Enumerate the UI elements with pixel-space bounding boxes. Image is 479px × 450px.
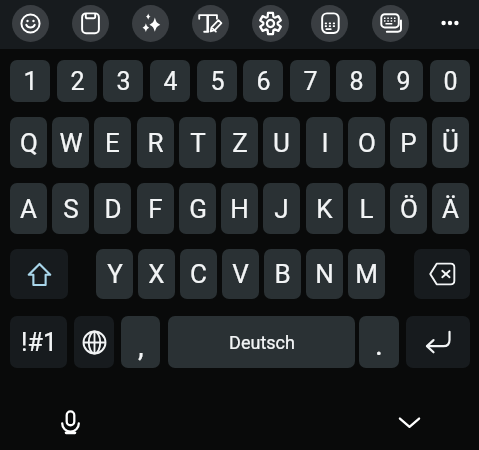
- button[interactable]: S: [52, 183, 89, 234]
- button[interactable]: E: [94, 117, 131, 168]
- staticText: W: [59, 128, 83, 158]
- staticText: A: [20, 194, 37, 224]
- staticText: G: [189, 194, 207, 224]
- button[interactable]: 5: [197, 60, 237, 102]
- button[interactable]: 7: [290, 60, 330, 102]
- staticText: 3: [116, 67, 131, 96]
- button[interactable]: Q: [10, 117, 47, 168]
- button[interactable]: Number pad: [311, 5, 348, 42]
- button[interactable]: O: [348, 117, 385, 168]
- button[interactable]: 9: [383, 60, 423, 102]
- button[interactable]: Z: [221, 117, 258, 168]
- staticText: V: [232, 259, 249, 289]
- button[interactable]: F: [137, 183, 174, 234]
- button[interactable]: Change language: [74, 316, 114, 368]
- button[interactable]: ,: [121, 316, 160, 368]
- staticText: P: [400, 128, 417, 158]
- button[interactable]: Ü: [432, 117, 469, 168]
- button[interactable]: Clipboard: [72, 5, 109, 42]
- button[interactable]: Voice input: [50, 402, 90, 442]
- button[interactable]: 6: [243, 60, 283, 102]
- staticText: H: [230, 194, 249, 224]
- button[interactable]: 4: [150, 60, 190, 102]
- button[interactable]: 3: [103, 60, 143, 102]
- staticText: Ö: [400, 194, 418, 224]
- button[interactable]: U: [263, 117, 300, 168]
- staticText: 2: [70, 67, 85, 96]
- staticText: !#1: [21, 328, 57, 357]
- button[interactable]: More options: [431, 4, 469, 42]
- staticText: 9: [396, 67, 411, 96]
- button[interactable]: D: [94, 183, 131, 234]
- staticText: Y: [107, 259, 123, 289]
- staticText: 5: [210, 67, 225, 96]
- staticText: Deutsch: [229, 332, 295, 353]
- button[interactable]: AI suggestions: [132, 5, 169, 42]
- staticText: Q: [20, 128, 38, 158]
- button[interactable]: Text editing: [192, 5, 229, 42]
- button[interactable]: K: [306, 183, 343, 234]
- button[interactable]: I: [306, 117, 343, 168]
- staticText: R: [147, 128, 164, 158]
- staticText: Ä: [442, 194, 459, 224]
- button[interactable]: Settings: [252, 5, 289, 42]
- button[interactable]: H: [221, 183, 258, 234]
- button[interactable]: Switch keyboard: [372, 5, 409, 42]
- button[interactable]: W: [52, 117, 89, 168]
- staticText: N: [315, 259, 334, 289]
- button[interactable]: Ö: [390, 183, 427, 234]
- button[interactable]: 0: [430, 60, 470, 102]
- staticText: 8: [349, 67, 364, 96]
- staticText: E: [105, 128, 120, 158]
- button[interactable]: R: [137, 117, 174, 168]
- staticText: O: [358, 128, 376, 158]
- button[interactable]: Y: [96, 249, 133, 299]
- button[interactable]: 8: [336, 60, 376, 102]
- button[interactable]: !#1: [10, 316, 67, 368]
- button[interactable]: Emoji: [12, 5, 49, 42]
- staticText: X: [148, 259, 165, 289]
- button[interactable]: A: [10, 183, 47, 234]
- staticText: B: [274, 259, 291, 289]
- button[interactable]: B: [264, 249, 301, 299]
- staticText: .: [375, 327, 383, 362]
- button[interactable]: Backspace: [414, 249, 470, 299]
- button[interactable]: Shift: [10, 249, 68, 299]
- button[interactable]: J: [263, 183, 300, 234]
- button[interactable]: T: [179, 117, 216, 168]
- staticText: Ü: [442, 128, 459, 158]
- staticText: J: [274, 194, 289, 224]
- button[interactable]: X: [138, 249, 175, 299]
- staticText: T: [190, 128, 206, 158]
- button[interactable]: N: [306, 249, 343, 299]
- staticText: I: [321, 128, 329, 158]
- staticText: Z: [232, 128, 248, 158]
- button[interactable]: M: [348, 249, 385, 299]
- staticText: 0: [443, 67, 458, 96]
- staticText: S: [63, 194, 79, 224]
- staticText: D: [104, 194, 122, 224]
- staticText: 1: [23, 67, 38, 96]
- button[interactable]: V: [222, 249, 259, 299]
- button[interactable]: P: [390, 117, 427, 168]
- staticText: 6: [256, 67, 271, 96]
- button[interactable]: G: [179, 183, 216, 234]
- staticText: L: [359, 194, 374, 224]
- button[interactable]: .: [359, 316, 399, 368]
- button[interactable]: L: [348, 183, 385, 234]
- staticText: 4: [163, 67, 178, 96]
- button[interactable]: 1: [10, 60, 50, 102]
- staticText: M: [355, 259, 378, 289]
- button[interactable]: Enter: [406, 316, 470, 368]
- staticText: F: [148, 194, 163, 224]
- button[interactable]: Hide keyboard: [389, 401, 429, 441]
- button[interactable]: Ä: [432, 183, 469, 234]
- staticText: U: [273, 128, 290, 158]
- staticText: K: [316, 194, 333, 224]
- button[interactable]: Deutsch: [168, 316, 355, 368]
- button[interactable]: 2: [57, 60, 97, 102]
- button[interactable]: C: [180, 249, 217, 299]
- staticText: ,: [138, 329, 144, 363]
- staticText: 7: [303, 67, 318, 96]
- staticText: C: [190, 259, 207, 289]
